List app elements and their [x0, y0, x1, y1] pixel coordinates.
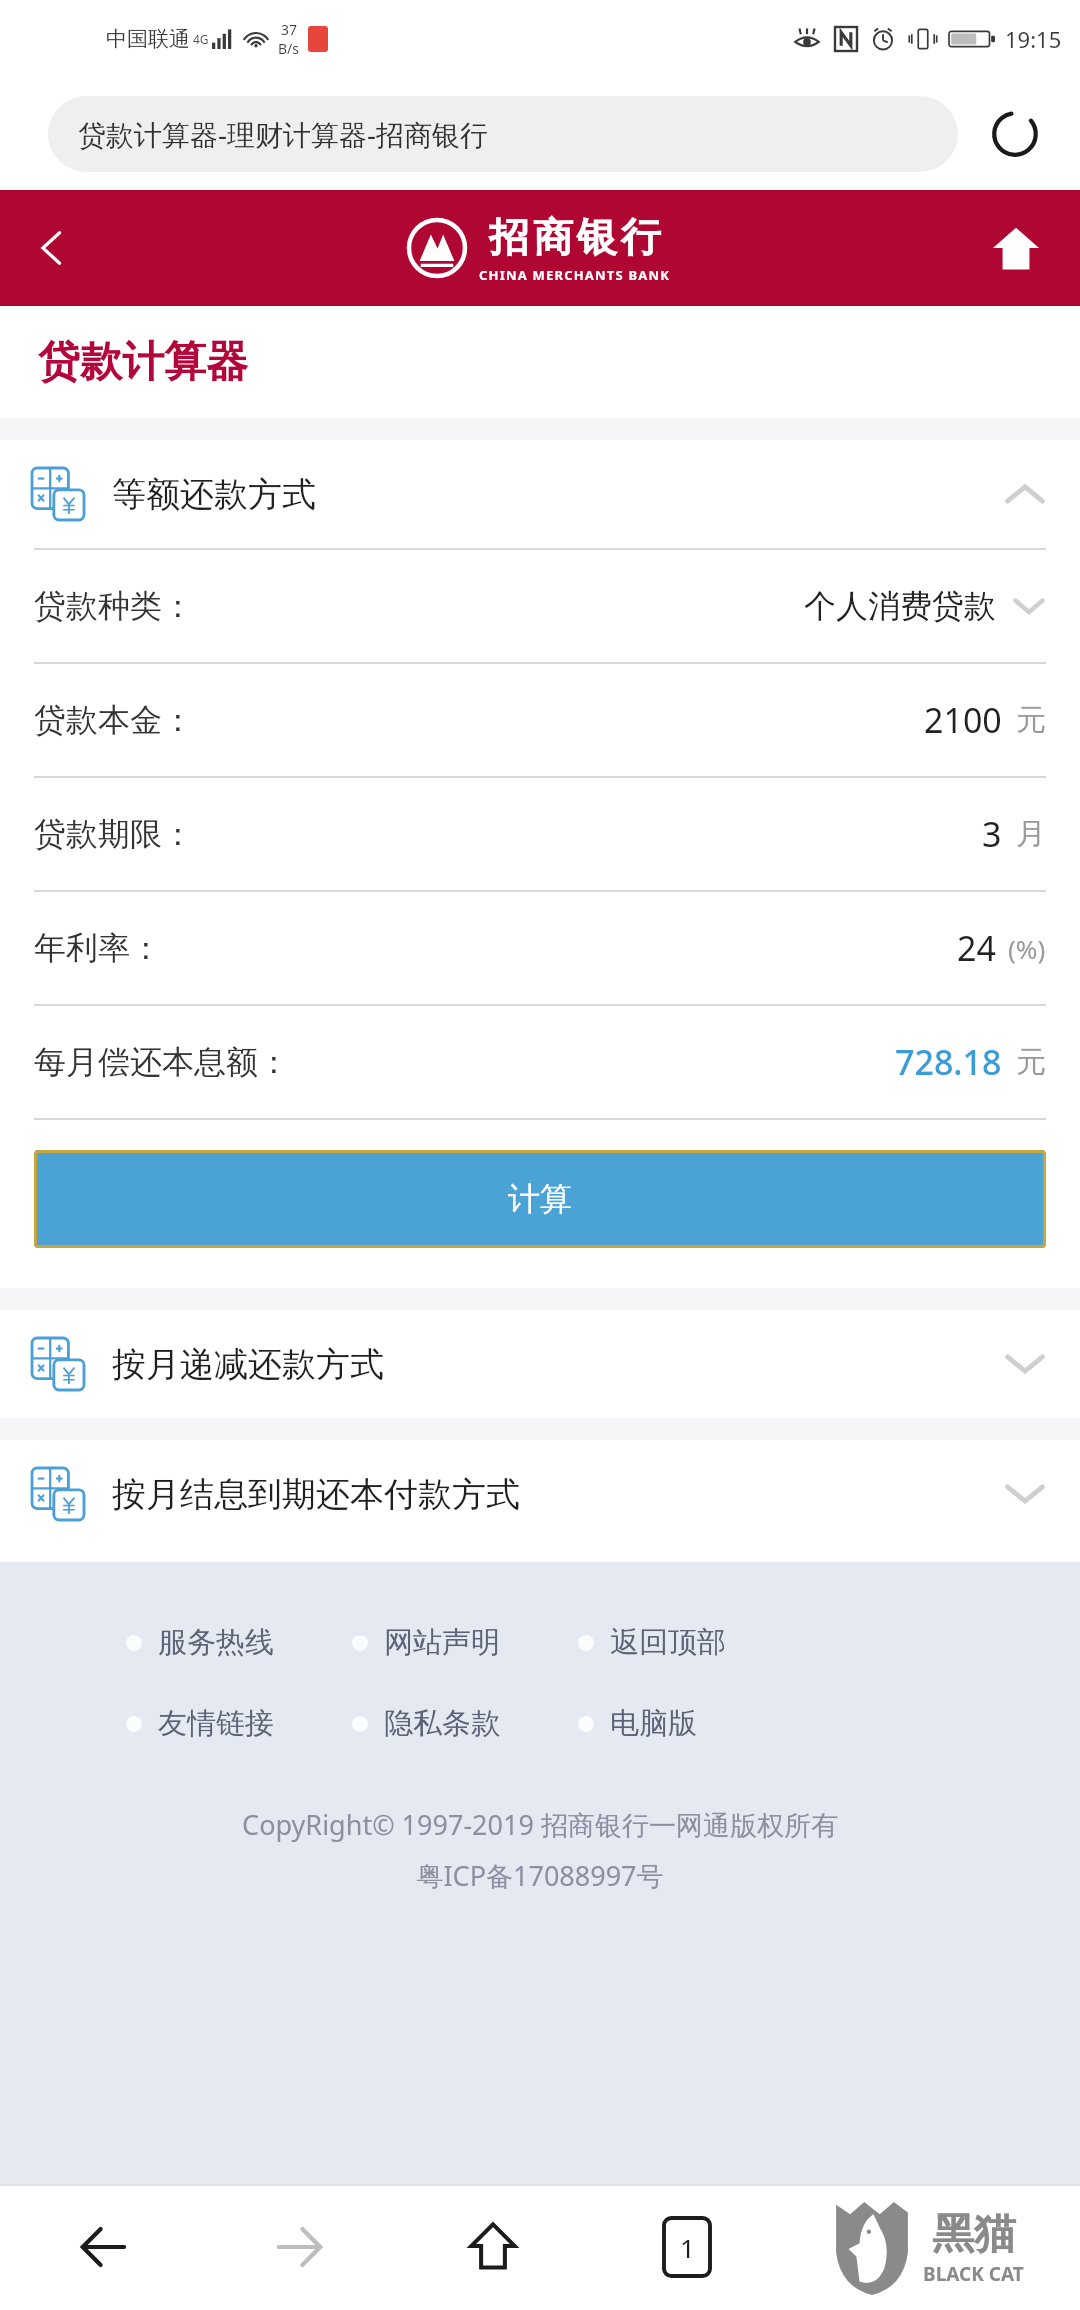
staticText: 3: [982, 811, 1002, 857]
button[interactable]: 计算: [34, 1150, 1046, 1248]
staticText: 24: [957, 925, 996, 971]
button[interactable]: Back: [56, 2199, 152, 2295]
staticText: 中国联通: [106, 26, 190, 52]
button[interactable]: 年利率：: [0, 892, 1080, 1004]
staticText: 黑猫: [932, 2208, 1016, 2261]
staticText: 电脑版: [610, 1705, 697, 1742]
staticText: 服务热线: [158, 1624, 274, 1661]
staticText: 按月递减还款方式: [112, 1343, 384, 1386]
staticText: 贷款种类：: [34, 586, 194, 626]
staticText: 4G: [193, 31, 209, 47]
staticText: 等额还款方式: [112, 473, 316, 516]
button[interactable]: Forward: [251, 2199, 347, 2295]
staticText: 友情链接: [158, 1705, 274, 1742]
button[interactable]: Home: [445, 2199, 541, 2295]
button[interactable]: 等额还款方式: [0, 440, 1080, 548]
staticText: 按月结息到期还本付款方式: [112, 1473, 520, 1516]
staticText: 贷款计算器: [38, 336, 248, 389]
staticText: 元: [1016, 1043, 1046, 1081]
staticText: 隐私条款: [384, 1705, 500, 1742]
button[interactable]: Home: [980, 212, 1052, 284]
staticText: BLACK CAT: [923, 2261, 1024, 2287]
button[interactable]: 友情链接: [126, 1705, 274, 1742]
staticText: 1: [680, 2230, 695, 2265]
staticText: 每月偿还本息额：: [34, 1042, 290, 1082]
button[interactable]: 贷款种类：: [0, 550, 1080, 662]
staticText: 贷款期限：: [34, 814, 194, 854]
button[interactable]: 按月结息到期还本付款方式: [0, 1440, 1080, 1548]
staticText: 月: [1016, 815, 1046, 853]
button[interactable]: 按月递减还款方式: [0, 1310, 1080, 1418]
button[interactable]: 贷款本金：: [0, 664, 1080, 776]
staticText: 网站声明: [384, 1624, 500, 1661]
staticText: CHINA MERCHANTS BANK: [479, 266, 671, 284]
staticText: 粤ICP备17088997号: [0, 1857, 1080, 1894]
button[interactable]: 网站声明: [352, 1624, 500, 1661]
button[interactable]: 贷款期限：: [0, 778, 1080, 890]
button[interactable]: 每月偿还本息额：: [0, 1006, 1080, 1118]
button[interactable]: Reload: [984, 103, 1046, 165]
staticText: 元: [1016, 701, 1046, 739]
staticText: 个人消费贷款: [804, 586, 996, 626]
button[interactable]: 隐私条款: [352, 1705, 500, 1742]
button[interactable]: 返回顶部: [578, 1624, 726, 1661]
staticText: 年利率：: [34, 928, 162, 968]
staticText: 计算: [508, 1179, 572, 1219]
button[interactable]: Tabs: [639, 2199, 735, 2295]
staticText: 贷款计算器-理财计算器-招商银行: [78, 115, 489, 153]
staticText: (%): [1008, 931, 1046, 966]
staticText: 728.18: [895, 1039, 1002, 1085]
button[interactable]: 贷款计算器-理财计算器-招商银行: [48, 96, 958, 172]
staticText: 37: [281, 20, 298, 39]
staticText: 19:15: [1005, 24, 1062, 54]
staticText: B/s: [278, 39, 300, 58]
staticText: 2100: [924, 697, 1002, 743]
button[interactable]: 服务热线: [126, 1624, 274, 1661]
staticText: 返回顶部: [610, 1624, 726, 1661]
button[interactable]: Back: [14, 210, 90, 286]
staticText: 招商银行: [487, 212, 663, 262]
staticText: 贷款本金：: [34, 700, 194, 740]
button[interactable]: 电脑版: [578, 1705, 697, 1742]
staticText: CopyRight© 1997-2019 招商银行一网通版权所有: [0, 1806, 1080, 1843]
